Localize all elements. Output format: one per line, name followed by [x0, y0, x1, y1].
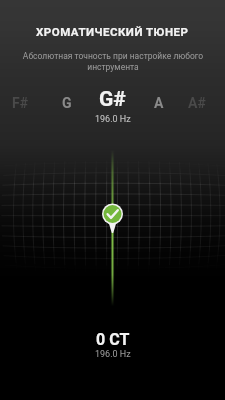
button[interactable]: G#	[99, 87, 126, 112]
staticText: F#	[12, 95, 29, 111]
button[interactable]: A	[154, 95, 164, 111]
button[interactable]: F#	[12, 95, 29, 111]
staticText: 0 CT	[96, 330, 130, 349]
staticText: ХРОМАТИЧЕСКИЙ ТЮНЕР	[36, 25, 189, 38]
staticText: G#	[99, 87, 126, 112]
button[interactable]: A#	[188, 95, 206, 111]
staticText: Абсолютная точность при настройке любого…	[15, 51, 211, 72]
staticText: A	[154, 95, 164, 111]
staticText: G	[62, 95, 72, 111]
button[interactable]: G	[62, 95, 72, 111]
staticText: 196.0 Hz	[95, 114, 131, 125]
staticText: 196.0 Hz	[95, 349, 131, 360]
staticText: A#	[188, 95, 206, 111]
